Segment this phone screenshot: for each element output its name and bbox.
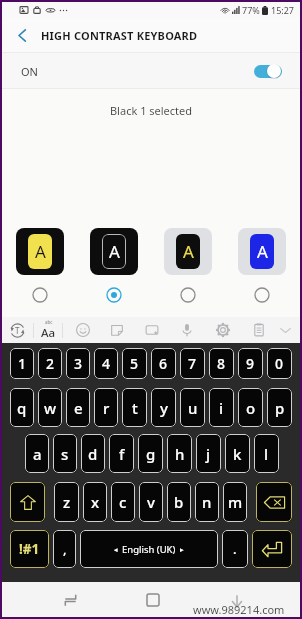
button[interactable]: p [267, 388, 292, 427]
button[interactable]: Enter [252, 530, 292, 568]
button[interactable]: 2 [38, 348, 62, 379]
staticText: 0 [275, 354, 284, 373]
button[interactable]: y [151, 388, 176, 427]
button[interactable]: 3 [66, 348, 90, 379]
button[interactable]: d [81, 434, 105, 473]
staticText: o [246, 398, 256, 418]
staticText: 77% [242, 4, 260, 16]
button[interactable]: A [238, 228, 286, 303]
staticText: z [63, 492, 71, 512]
staticText: T [15, 325, 20, 336]
button[interactable]: o [238, 388, 263, 427]
staticText: e [74, 398, 83, 418]
button[interactable]: u [180, 388, 205, 427]
staticText: i [219, 398, 224, 418]
button[interactable]: q [10, 388, 34, 427]
staticText: w [44, 398, 57, 418]
button[interactable]: Stickers [100, 317, 134, 343]
button[interactable]: Clipboard [242, 317, 276, 343]
button[interactable]: v [139, 482, 163, 522]
button[interactable]: Recents [54, 582, 86, 617]
button[interactable]: x [83, 482, 107, 522]
button[interactable]: r [94, 388, 118, 427]
button[interactable]: A [90, 228, 138, 303]
button[interactable]: w [38, 388, 62, 427]
button[interactable]: Navigate up [2, 18, 41, 53]
staticText: ▸ [180, 546, 184, 554]
button[interactable]: Collapse toolbar [270, 317, 300, 343]
button[interactable]: k [225, 434, 250, 473]
button[interactable]: Backspace [256, 482, 292, 522]
staticText: Aa [41, 325, 56, 341]
staticText: 1 [18, 354, 27, 373]
staticText: k [233, 444, 242, 464]
button[interactable]: f [109, 434, 134, 473]
staticText: ◂ [114, 546, 118, 554]
button[interactable]: 0 [267, 348, 292, 379]
button[interactable]: 6 [151, 348, 176, 379]
button[interactable]: e [66, 388, 90, 427]
staticText: q [17, 398, 27, 418]
button[interactable]: m [223, 482, 247, 522]
button[interactable]: Voice input [170, 317, 204, 343]
button[interactable]: 7 [180, 348, 205, 379]
button[interactable]: c [111, 482, 135, 522]
button[interactable]: Emoji [66, 317, 100, 343]
staticText: t [132, 398, 138, 418]
staticText: m [228, 492, 243, 512]
button[interactable]: Hide keyboard [221, 582, 253, 617]
staticText: A [109, 240, 120, 263]
button[interactable]: l [254, 434, 279, 473]
staticText: 8 [217, 354, 226, 373]
button[interactable]: 8 [209, 348, 234, 379]
button[interactable]: . [222, 530, 248, 568]
staticText: 4 [102, 354, 111, 373]
staticText: n [202, 492, 212, 512]
button[interactable]: Home [137, 582, 169, 617]
staticText: abc [45, 319, 53, 325]
staticText: y [160, 398, 168, 418]
button[interactable]: Shift [10, 482, 45, 522]
button[interactable]: , [53, 530, 76, 568]
button[interactable]: n [195, 482, 219, 522]
button[interactable]: s [53, 434, 77, 473]
staticText: a [33, 444, 42, 464]
button[interactable]: GIF [135, 317, 169, 343]
button[interactable]: Space, English (UK) [80, 530, 218, 568]
staticText: h [175, 444, 185, 464]
staticText: 7 [188, 354, 197, 373]
button[interactable]: Text style [34, 317, 62, 343]
staticText: 6 [159, 354, 168, 373]
button[interactable]: z [54, 482, 79, 522]
button[interactable]: j [196, 434, 221, 473]
button[interactable]: Symbols [10, 530, 49, 568]
button[interactable]: t [122, 388, 147, 427]
button[interactable]: A [164, 228, 212, 303]
button[interactable]: 4 [94, 348, 118, 379]
staticText: v [147, 492, 155, 512]
button[interactable]: b [167, 482, 191, 522]
staticText: x [91, 492, 100, 512]
button[interactable]: g [138, 434, 163, 473]
staticText: 15:27 [271, 4, 295, 16]
button[interactable]: h [167, 434, 192, 473]
staticText: !#1 [19, 540, 40, 558]
staticText: p [275, 398, 285, 418]
button[interactable]: Translate [2, 317, 33, 343]
button[interactable]: a [25, 434, 49, 473]
button[interactable]: 9 [238, 348, 263, 379]
staticText: s [61, 444, 69, 464]
button[interactable]: High contrast keyboard on [254, 63, 282, 79]
staticText: Black 1 selected [2, 103, 300, 118]
button[interactable]: 5 [122, 348, 147, 379]
staticText: HIGH CONTRAST KEYBOARD [41, 28, 198, 43]
button[interactable]: i [209, 388, 234, 427]
button[interactable]: 1 [10, 348, 34, 379]
staticText: 2 [46, 354, 55, 373]
button[interactable]: Keyboard settings [206, 317, 240, 343]
button[interactable]: A [16, 228, 64, 303]
staticText: f [119, 444, 125, 464]
staticText: , [63, 540, 67, 558]
staticText: ON [21, 64, 38, 79]
staticText: A [35, 240, 46, 263]
